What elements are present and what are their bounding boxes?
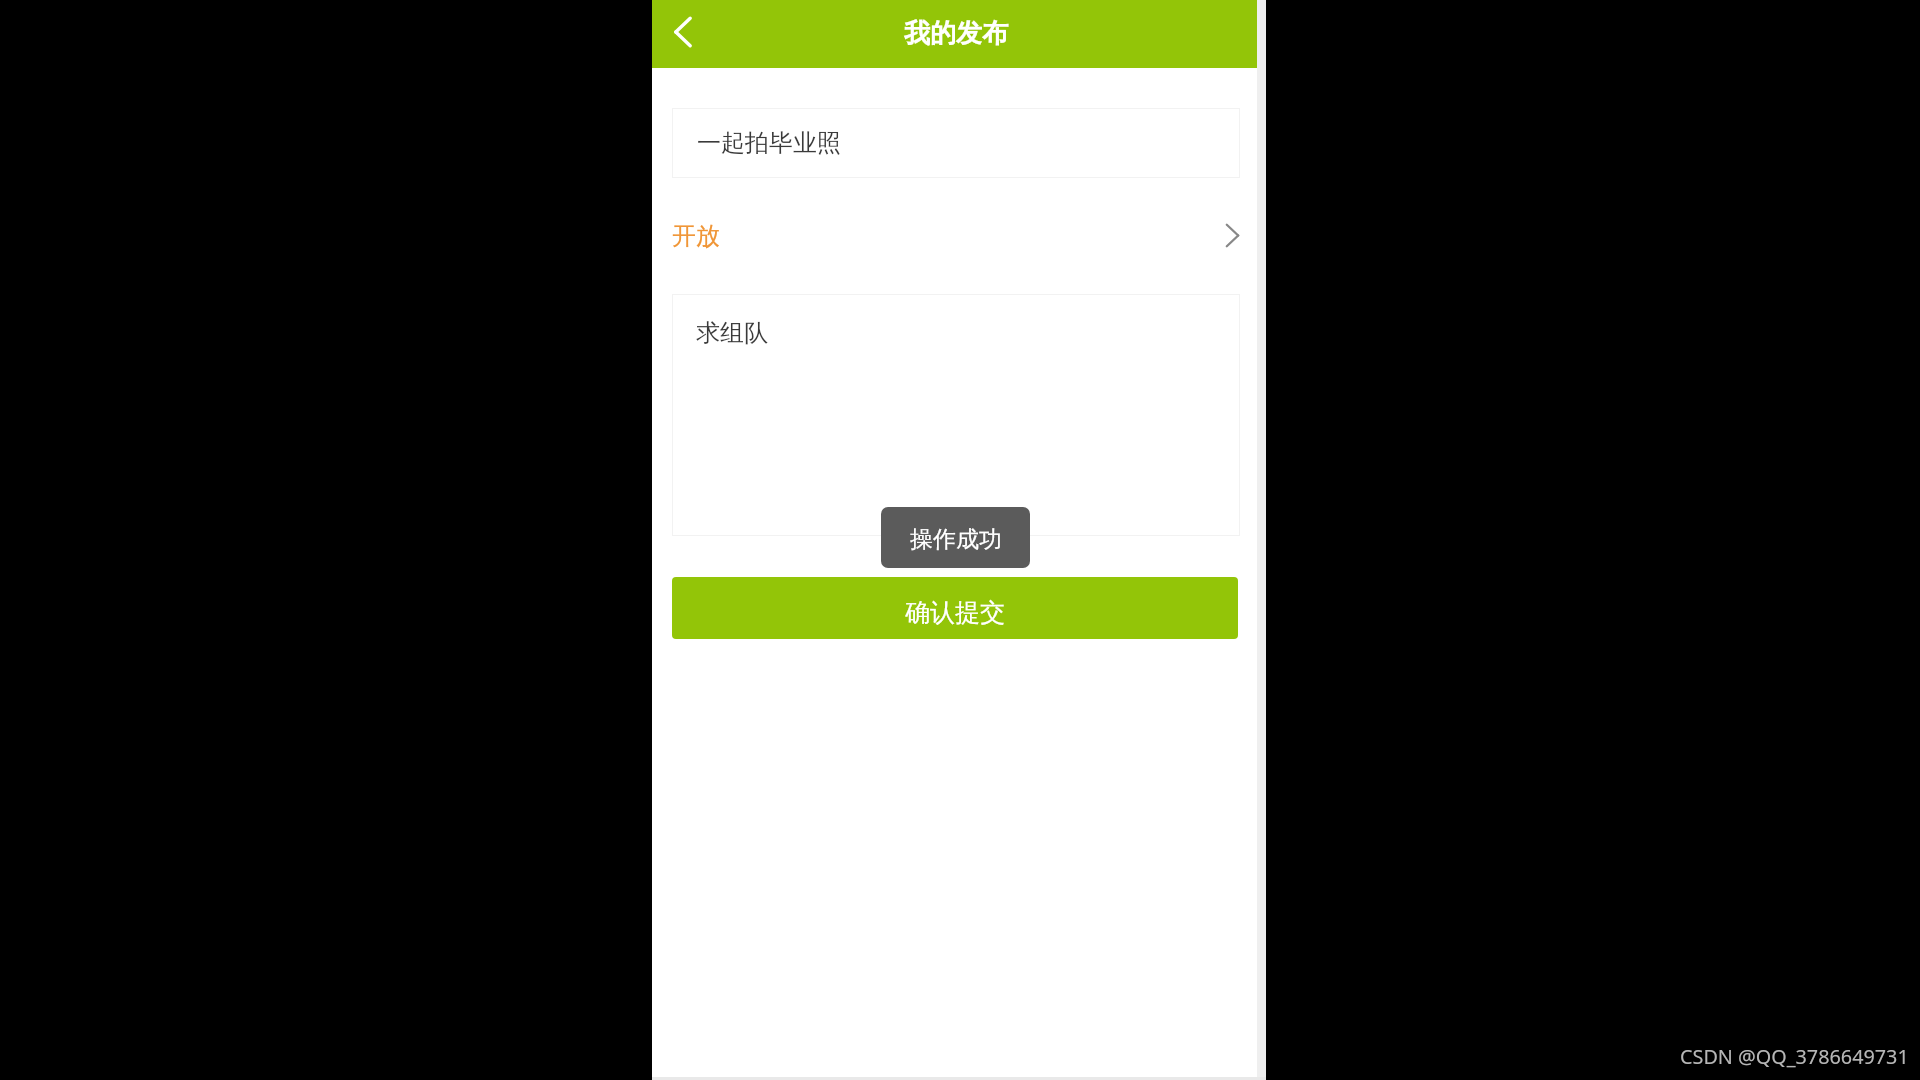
button[interactable]: 确认提交 xyxy=(672,577,1238,639)
staticText: 求组队 xyxy=(696,318,768,348)
staticText: 开放 xyxy=(672,221,720,251)
staticText: 操作成功 xyxy=(910,525,1002,554)
staticText: 确认提交 xyxy=(905,597,1005,628)
button[interactable]: Back xyxy=(656,0,712,68)
button[interactable]: 求组队 xyxy=(672,294,1240,536)
staticText: CSDN @QQ_3786649731 xyxy=(1680,1043,1909,1070)
button[interactable]: 开放 xyxy=(652,200,1266,272)
staticText: 我的发布 xyxy=(904,17,1008,50)
button[interactable]: 一起拍毕业照 xyxy=(672,108,1240,178)
staticText: 一起拍毕业照 xyxy=(697,128,841,158)
